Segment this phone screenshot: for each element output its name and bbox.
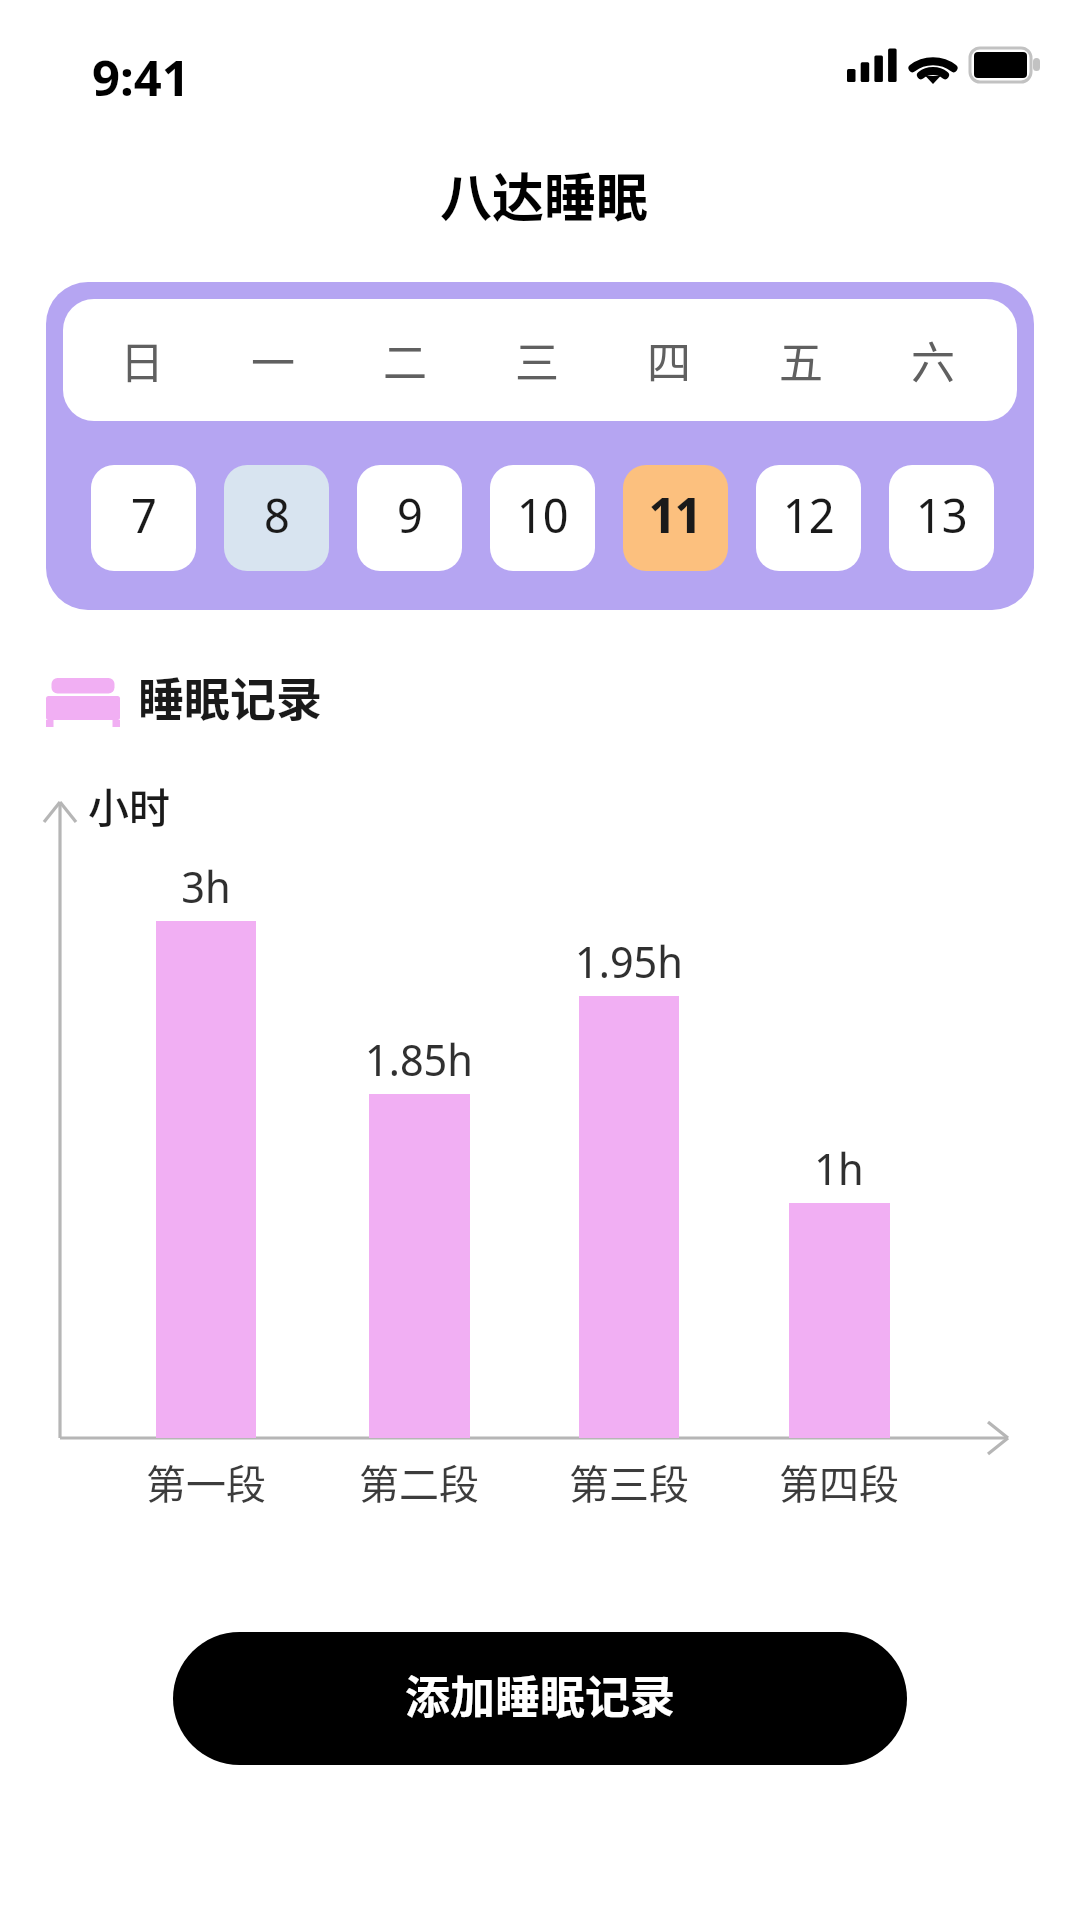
staticText: 8 [264,482,290,547]
button[interactable]: 10 [490,465,595,571]
staticText: 11 [649,482,702,547]
staticText: 五 [779,328,823,392]
staticText: 10 [517,482,569,547]
staticText: 第一段 [66,1453,346,1511]
staticText: 三 [515,328,559,392]
staticText: 1h [699,1138,979,1198]
staticText: 第三段 [489,1453,769,1511]
button[interactable]: 7 [91,465,196,571]
staticText: 八达睡眠 [440,157,649,232]
button[interactable]: 13 [889,465,994,571]
staticText: 1.95h [489,931,769,991]
button[interactable]: 12 [756,465,861,571]
staticText: 12 [783,482,835,547]
staticText: 9 [397,482,423,547]
button[interactable]: 9 [357,465,462,571]
button[interactable]: 添加睡眠记录 [173,1632,907,1765]
button[interactable]: 11 [623,465,728,571]
staticText: 1.85h [279,1029,559,1089]
staticText: 六 [911,328,955,392]
staticText: 添加睡眠记录 [405,1662,676,1727]
staticText: 四 [647,328,691,392]
staticText: 二 [383,328,427,392]
staticText: 9:41 [92,44,190,111]
button[interactable]: 8 [224,465,329,571]
staticText: 第二段 [279,1453,559,1511]
staticText: 睡眠记录 [138,663,322,730]
staticText: 小时 [88,775,170,834]
staticText: 3h [66,856,346,916]
staticText: 日 [120,328,164,392]
staticText: 13 [916,482,968,547]
staticText: 7 [131,482,157,547]
other: Status icons [847,46,1047,88]
staticText: 一 [251,328,295,392]
staticText: 第四段 [699,1453,979,1511]
